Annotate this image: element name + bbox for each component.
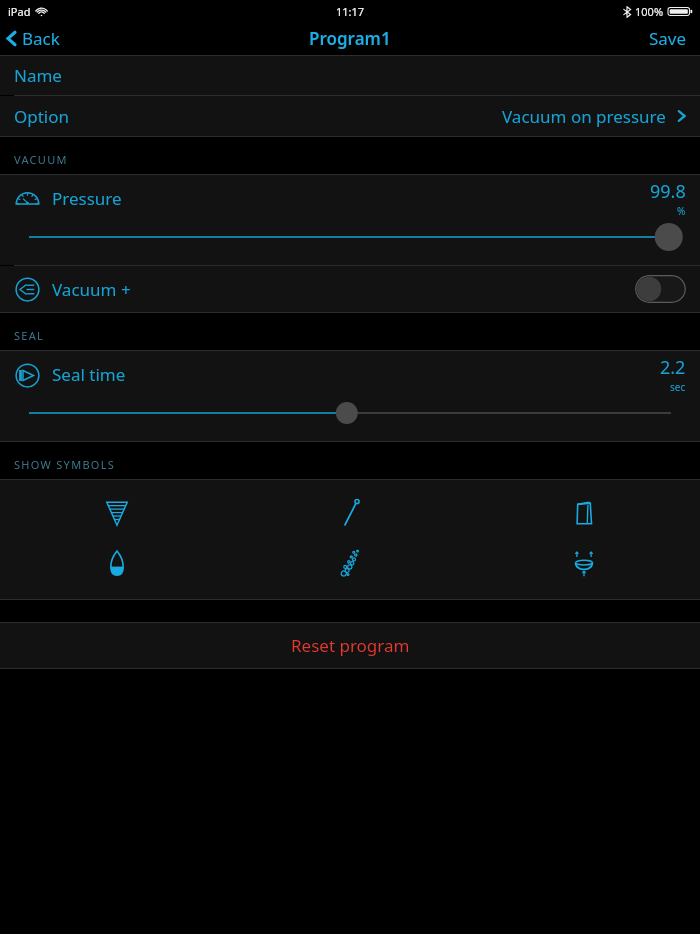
staticText: % <box>677 204 686 218</box>
button[interactable]: Slider <box>0 222 700 252</box>
staticText: Program1 <box>309 27 391 50</box>
button[interactable]: Vacuum + <box>0 266 700 312</box>
button[interactable]: Pressure <box>0 175 700 222</box>
staticText: Vacuum on pressure <box>502 105 666 128</box>
button[interactable]: Vacuum plus toggle <box>635 275 686 303</box>
button[interactable]: Needle <box>234 493 467 532</box>
button[interactable]: Vortex <box>0 493 234 532</box>
staticText: 99.8 <box>650 179 686 204</box>
button[interactable]: Back <box>0 27 70 50</box>
button[interactable]: Seal time <box>0 351 700 398</box>
button[interactable]: Bowl <box>467 543 700 582</box>
button[interactable]: Option <box>0 96 700 136</box>
button[interactable]: Name <box>0 56 700 95</box>
staticText: sec <box>670 380 686 394</box>
staticText: 100% <box>635 4 664 19</box>
staticText: Vacuum + <box>52 278 131 301</box>
staticText: 11:17 <box>336 4 365 19</box>
staticText: Back <box>22 27 60 50</box>
staticText: iPad <box>8 4 31 19</box>
staticText: Option <box>14 105 70 128</box>
staticText: SEAL <box>14 328 45 343</box>
button[interactable]: Slider <box>0 398 700 428</box>
button[interactable]: Bag <box>467 493 700 532</box>
staticText: 2.2 <box>660 355 686 380</box>
button[interactable]: Save <box>636 22 700 55</box>
staticText: Save <box>649 27 687 50</box>
staticText: VACUUM <box>14 152 68 167</box>
button[interactable]: Liquid drop <box>0 543 234 582</box>
staticText: Seal time <box>52 363 126 386</box>
staticText: Reset program <box>291 634 410 657</box>
staticText: SHOW SYMBOLS <box>14 457 116 472</box>
button[interactable]: Bubbles <box>234 543 467 582</box>
staticText: Pressure <box>52 187 122 210</box>
button[interactable]: Reset program <box>0 623 700 668</box>
staticText: Name <box>14 64 62 87</box>
